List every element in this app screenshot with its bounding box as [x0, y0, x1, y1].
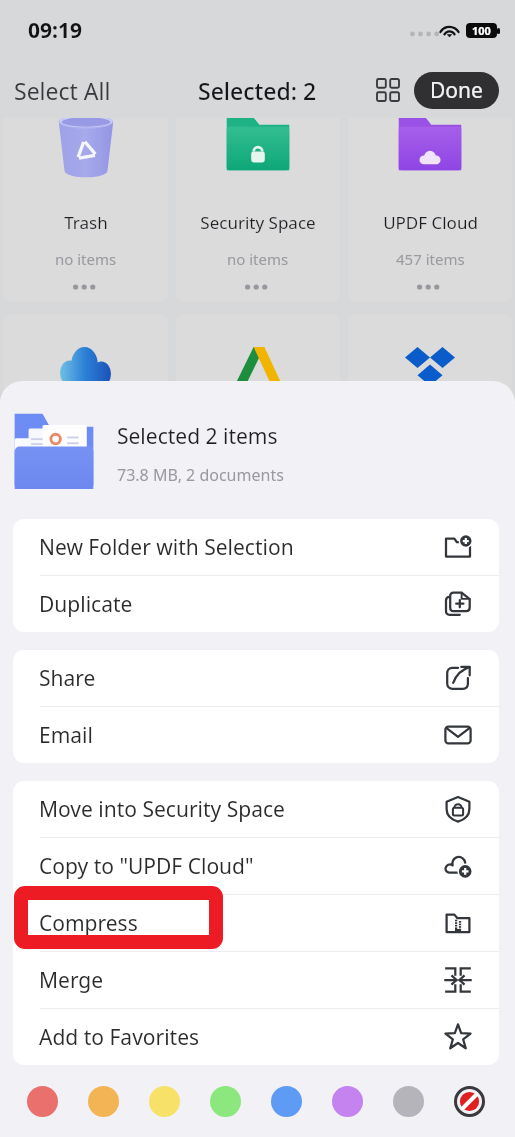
- button[interactable]: Share: [13, 650, 499, 706]
- button[interactable]: New Folder with Selection: [13, 519, 499, 575]
- button[interactable]: No color: [454, 1086, 485, 1117]
- button[interactable]: Copy to "UPDF Cloud": [13, 838, 499, 894]
- staticText: no items: [227, 249, 289, 269]
- staticText: Selected: 2: [198, 75, 317, 106]
- staticText: no items: [55, 249, 117, 269]
- button[interactable]: Color tag: [27, 1086, 58, 1117]
- staticText: Security Space: [200, 211, 316, 234]
- button[interactable]: Select All: [0, 75, 125, 106]
- button[interactable]: Move into Security Space: [13, 781, 499, 837]
- staticText: 73.8 MB, 2 documents: [117, 464, 284, 486]
- button[interactable]: Trash: [3, 118, 168, 302]
- staticText: Done: [430, 76, 483, 105]
- staticText: New Folder with Selection: [39, 533, 294, 562]
- staticText: Move into Security Space: [39, 795, 285, 824]
- button[interactable]: [348, 314, 512, 434]
- staticText: Share: [39, 664, 96, 693]
- staticText: Email: [39, 721, 93, 750]
- staticText: 09:19: [28, 16, 82, 45]
- button[interactable]: Color tag: [210, 1086, 241, 1117]
- button[interactable]: Email: [13, 707, 499, 763]
- button[interactable]: UPDF Cloud: [348, 118, 512, 302]
- button[interactable]: Color tag: [393, 1086, 424, 1117]
- staticText: 100: [472, 23, 491, 38]
- button[interactable]: Add to Favorites: [13, 1009, 499, 1065]
- button[interactable]: Color tag: [88, 1086, 119, 1117]
- button[interactable]: [176, 314, 340, 434]
- staticText: UPDF Cloud: [383, 211, 478, 234]
- button[interactable]: Duplicate: [13, 576, 499, 632]
- staticText: Merge: [39, 966, 104, 995]
- button[interactable]: Color tag: [332, 1086, 363, 1117]
- staticText: Compress: [39, 909, 138, 938]
- staticText: 457 items: [396, 249, 465, 269]
- staticText: Trash: [64, 211, 108, 234]
- staticText: Copy to "UPDF Cloud": [39, 852, 254, 881]
- staticText: Add to Favorites: [39, 1023, 200, 1052]
- staticText: Duplicate: [39, 590, 133, 619]
- button[interactable]: Compress: [13, 895, 499, 951]
- button[interactable]: Security Space: [176, 118, 340, 302]
- button[interactable]: Merge: [13, 952, 499, 1008]
- button[interactable]: Color tag: [149, 1086, 180, 1117]
- staticText: Selected 2 items: [117, 422, 278, 451]
- staticText: Select All: [14, 75, 111, 106]
- button[interactable]: Color tag: [271, 1086, 302, 1117]
- button[interactable]: [3, 314, 168, 434]
- button[interactable]: Grid view: [368, 70, 408, 110]
- button[interactable]: Done: [414, 72, 499, 109]
